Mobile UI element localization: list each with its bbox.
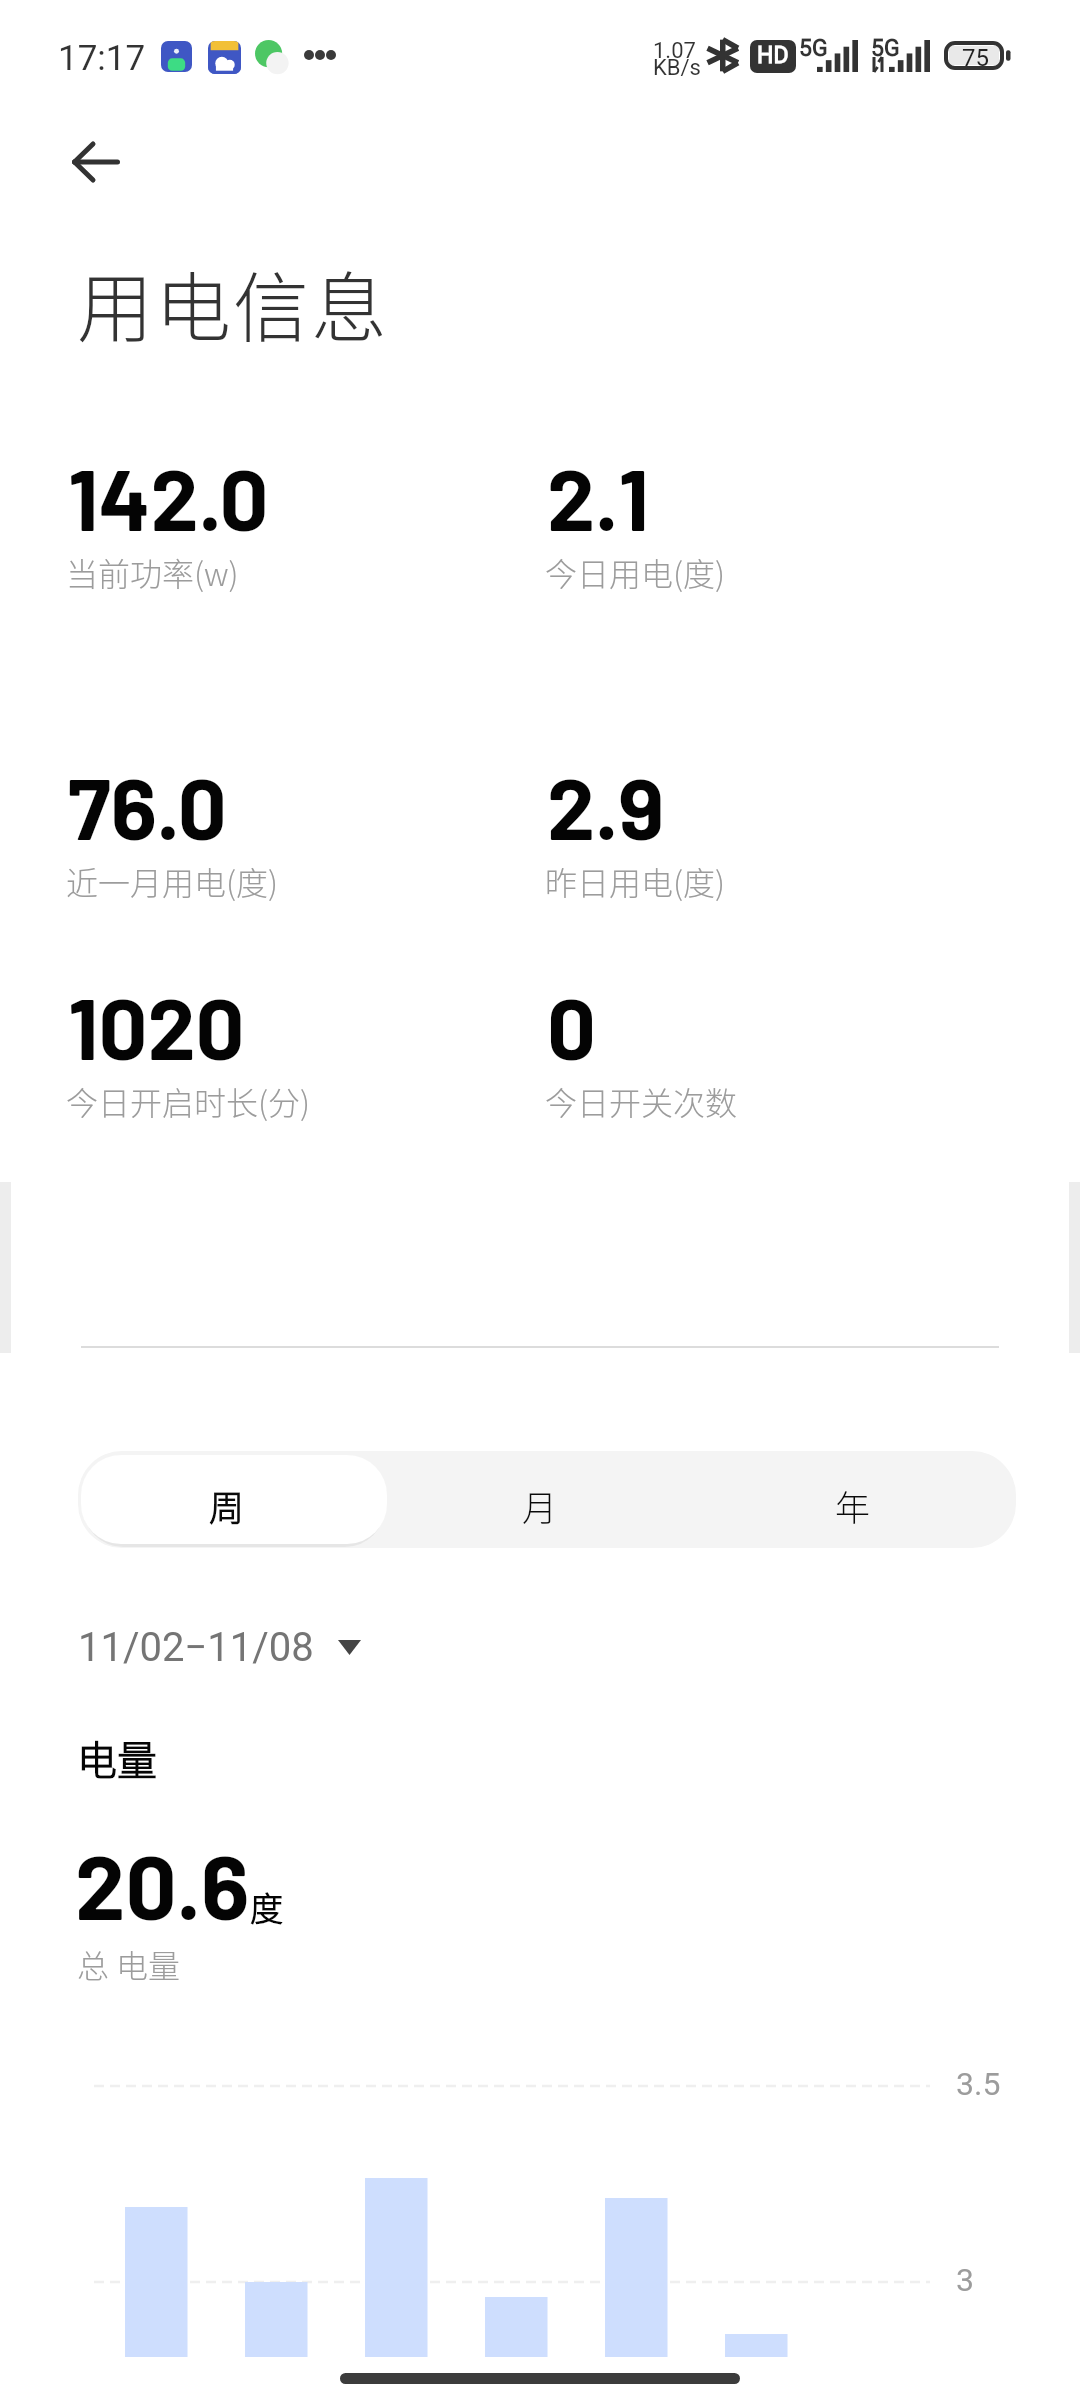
staticText: 当前功率(w) bbox=[66, 549, 239, 595]
staticText: 11/02−11/08 bbox=[78, 1624, 314, 1671]
staticText: 2 bbox=[786, 53, 796, 73]
staticText: 电量 bbox=[77, 1729, 157, 1787]
staticText: 用电信息 bbox=[77, 248, 389, 358]
staticText: 1020 bbox=[68, 974, 245, 1077]
button[interactable]: 年 bbox=[706, 1455, 1013, 1544]
staticText: 142.0 bbox=[68, 445, 269, 548]
staticText: 今日开关次数 bbox=[545, 1078, 738, 1124]
staticText: 0 bbox=[547, 974, 597, 1077]
staticText: 3 bbox=[956, 2261, 974, 2299]
staticText: 今日用电(度) bbox=[545, 549, 726, 595]
staticText: 5G bbox=[871, 35, 900, 62]
staticText: 1.07 bbox=[653, 38, 696, 64]
staticText: 1 bbox=[786, 38, 796, 58]
staticText: 近一月用电(度) bbox=[66, 858, 279, 904]
button[interactable]: Back bbox=[48, 114, 144, 210]
staticText: 2.9 bbox=[547, 754, 665, 857]
staticText: 昨日用电(度) bbox=[545, 858, 726, 904]
button[interactable]: 月 bbox=[393, 1455, 700, 1544]
staticText: 5G bbox=[799, 35, 828, 62]
staticText: KB/s bbox=[653, 55, 701, 81]
staticText: 今日开启时长(分) bbox=[66, 1078, 311, 1124]
staticText: 度 bbox=[250, 1883, 283, 1931]
button[interactable]: 周 bbox=[81, 1455, 387, 1544]
staticText: HD bbox=[757, 42, 789, 69]
staticText: 76.0 bbox=[68, 754, 227, 857]
staticText: 2.1 bbox=[547, 445, 649, 548]
button[interactable]: 11/02−11/08 bbox=[78, 1624, 361, 1671]
staticText: 总 电量 bbox=[77, 1941, 181, 1987]
staticText: 周 bbox=[209, 1480, 245, 1531]
staticText: 年 bbox=[835, 1480, 871, 1531]
staticText: 75 bbox=[962, 44, 989, 72]
staticText: 17:17 bbox=[58, 38, 146, 79]
staticText: 20.6 bbox=[75, 1830, 250, 1938]
staticText: 月 bbox=[522, 1480, 558, 1531]
staticText: 3.5 bbox=[956, 2065, 1001, 2103]
